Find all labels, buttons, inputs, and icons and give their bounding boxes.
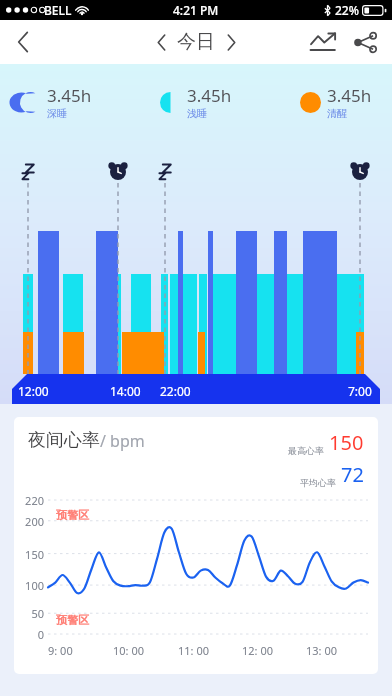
button[interactable]: 3.45h [20,84,92,120]
staticText: 22% [335,2,359,18]
staticText: 200 [16,514,44,529]
staticText: 3.45h [327,84,372,107]
button[interactable]: Share [344,21,386,63]
button[interactable]: Previous day [145,26,177,58]
staticText: 14:00 [110,383,141,399]
staticText: 7:00 [348,383,372,399]
button[interactable]: 夜间心率 [14,417,378,674]
staticText: 150 [16,547,44,562]
staticText: 平均心率 [300,477,336,488]
staticText: 0 [16,627,44,642]
staticText: BELL [44,2,72,18]
button[interactable]: Next day [215,26,247,58]
staticText: 220 [16,493,44,508]
staticText: 预警区 [56,508,89,522]
staticText: 预警区 [56,613,89,627]
staticText: 11: 00 [178,643,242,658]
staticText: 4:21 PM [173,2,219,18]
staticText: 150 [329,429,364,456]
staticText: 12: 00 [242,643,306,658]
staticText: 72 [341,461,364,488]
button[interactable]: 3.45h [160,84,232,120]
staticText: 3.45h [187,84,232,107]
button[interactable]: 今日 [177,30,215,54]
staticText: 22:00 [160,383,191,399]
staticText: 13: 00 [306,643,370,658]
staticText: 9: 00 [48,643,113,658]
staticText: 清醒 [327,107,347,120]
staticText: 夜间心率 [28,429,100,452]
staticText: 10: 00 [113,643,178,658]
staticText: 3.45h [47,84,92,107]
staticText: 12:00 [18,383,49,399]
staticText: 50 [16,606,44,621]
staticText: 100 [16,578,44,593]
button[interactable]: Trends [302,21,344,63]
staticText: / bpm [100,430,145,452]
button[interactable]: 3.45h [300,84,372,120]
staticText: 最高心率 [288,445,324,456]
staticText: 浅睡 [187,107,207,120]
button[interactable]: Back [0,20,46,64]
staticText: 深睡 [47,107,67,120]
